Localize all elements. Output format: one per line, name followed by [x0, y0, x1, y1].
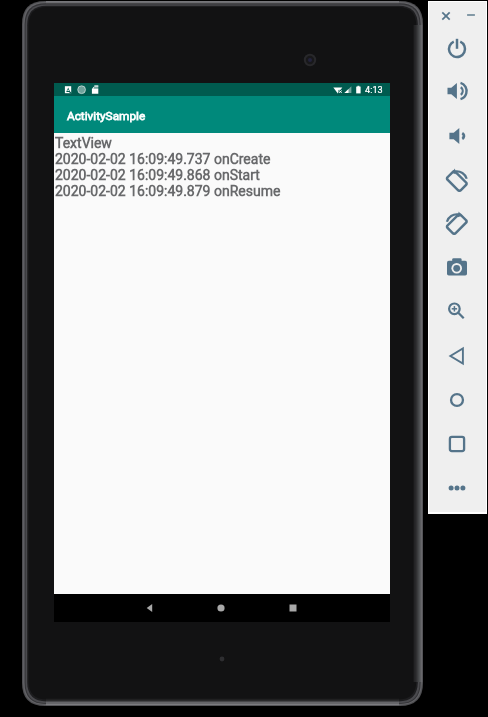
staticText: 4:13 — [365, 84, 383, 95]
button[interactable]: Home — [203, 594, 239, 622]
button[interactable]: Overview — [442, 429, 472, 459]
button[interactable]: Volume down — [442, 121, 472, 151]
button[interactable]: Minimize — [464, 8, 478, 22]
button[interactable]: Home — [442, 385, 472, 415]
staticText: TextView — [55, 135, 112, 151]
button[interactable]: Rotate left — [442, 166, 472, 196]
button[interactable]: Recent apps — [275, 594, 311, 622]
staticText: 2020-02-02 16:09:49.737 onCreate — [55, 151, 271, 167]
button[interactable]: Volume up — [442, 76, 472, 106]
button[interactable]: Back — [442, 341, 472, 371]
button[interactable]: Power — [442, 34, 472, 64]
button[interactable]: Zoom in — [442, 294, 472, 324]
button[interactable]: Take screenshot — [442, 253, 472, 283]
staticText: 2020-02-02 16:09:49.879 onResume — [55, 183, 281, 199]
button[interactable]: More options — [442, 473, 472, 503]
staticText: ActivitySample — [67, 109, 146, 123]
button[interactable]: Close — [439, 9, 453, 23]
button[interactable]: Back — [132, 594, 168, 622]
button[interactable]: Rotate right — [442, 209, 472, 239]
staticText: 2020-02-02 16:09:49.868 onStart — [55, 167, 260, 183]
